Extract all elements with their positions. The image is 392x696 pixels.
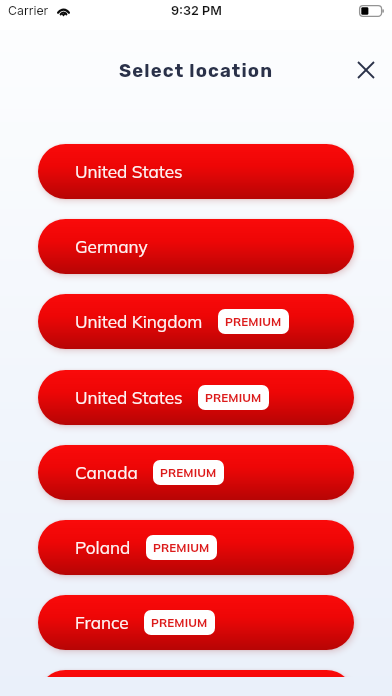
staticText: PREMIUM <box>153 540 210 555</box>
button[interactable]: United States <box>38 144 354 199</box>
button[interactable]: Poland <box>38 520 354 575</box>
button[interactable]: France <box>38 595 354 650</box>
staticText: United States <box>75 161 183 183</box>
button[interactable]: Netherlands <box>38 670 354 677</box>
staticText: PREMIUM <box>151 615 208 630</box>
staticText: United Kingdom <box>75 311 203 333</box>
button[interactable]: United States <box>38 370 354 425</box>
staticText: Select location <box>119 60 274 82</box>
staticText: France <box>75 612 129 634</box>
staticText: Carrier <box>8 3 49 18</box>
staticText: Germany <box>75 236 148 258</box>
staticText: PREMIUM <box>225 314 282 329</box>
button[interactable]: United Kingdom <box>38 294 354 349</box>
staticText: 9:32 PM <box>171 3 222 18</box>
button[interactable]: Germany <box>38 219 354 274</box>
button[interactable]: Canada <box>38 445 354 500</box>
staticText: PREMIUM <box>205 390 262 405</box>
staticText: PREMIUM <box>160 465 217 480</box>
staticText: Canada <box>75 462 138 484</box>
staticText: Poland <box>75 537 131 559</box>
button[interactable]: Close <box>346 51 386 91</box>
staticText: United States <box>75 387 183 409</box>
